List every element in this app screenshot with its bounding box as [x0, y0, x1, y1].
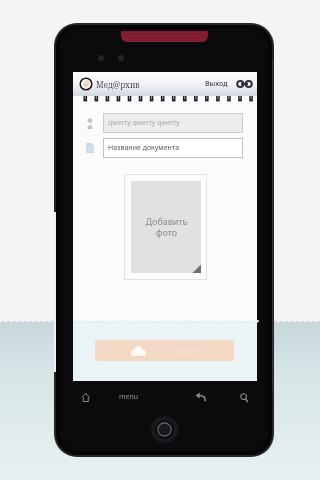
- button[interactable]: qwerty qwerty qwerty: [103, 113, 243, 133]
- button[interactable]: menu: [112, 390, 146, 404]
- button[interactable]: Share link: [236, 78, 253, 90]
- button[interactable]: Добавить фото: [124, 174, 207, 280]
- other: Medarhiv logo: [78, 76, 94, 92]
- button[interactable]: Home: [78, 389, 94, 405]
- button[interactable]: Search: [236, 389, 252, 405]
- button[interactable]: Выход: [203, 76, 230, 92]
- staticText: Название документа: [108, 143, 180, 153]
- other: Trackpad: [150, 415, 179, 444]
- button[interactable]: Отправить: [95, 340, 234, 361]
- staticText: Добавить фото: [145, 215, 188, 239]
- staticText: qwerty qwerty qwerty: [108, 118, 180, 128]
- button[interactable]: Medarhiv logo: [78, 76, 94, 92]
- staticText: Мед@рхив: [96, 79, 140, 90]
- button[interactable]: Название документа: [103, 138, 243, 158]
- button[interactable]: Trackpad: [150, 415, 179, 444]
- button[interactable]: Back: [192, 389, 210, 405]
- staticText: Выход: [205, 79, 228, 89]
- staticText: menu: [119, 392, 139, 402]
